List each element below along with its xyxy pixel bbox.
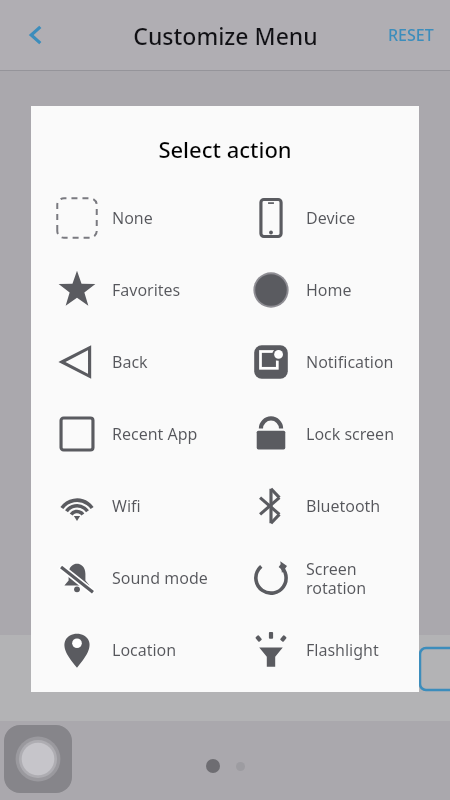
staticText: None [112, 207, 153, 229]
staticText: Flashlight [306, 639, 379, 661]
staticText: RESET [388, 24, 434, 46]
button[interactable]: RESET [380, 14, 442, 56]
button[interactable]: Favorites [31, 254, 225, 326]
staticText: Notification [306, 351, 394, 373]
button[interactable]: Flashlight [225, 614, 419, 686]
button[interactable]: Bluetooth [225, 470, 419, 542]
button[interactable]: Camera [4, 725, 72, 793]
staticText: Lock screen [306, 423, 395, 445]
button[interactable]: Back [14, 13, 58, 57]
button[interactable]: Screen rotation [225, 542, 419, 614]
staticText: Sound mode [112, 567, 208, 589]
staticText: Device [306, 207, 356, 229]
staticText: Favorites [112, 279, 181, 301]
staticText: Wifi [112, 495, 141, 517]
staticText: Home [306, 279, 352, 301]
button[interactable]: Lock screen [225, 398, 419, 470]
button[interactable]: Wifi [31, 470, 225, 542]
staticText: Back [112, 351, 148, 373]
button[interactable]: Device [225, 182, 419, 254]
staticText: Screen rotation [306, 558, 367, 599]
button[interactable]: Back [31, 326, 225, 398]
button[interactable]: Home [225, 254, 419, 326]
button[interactable]: None [31, 182, 225, 254]
staticText: Recent App [112, 423, 198, 445]
button[interactable]: Sound mode [31, 542, 225, 614]
button[interactable]: Recent App [31, 398, 225, 470]
staticText: Location [112, 639, 177, 661]
staticText: Customize Menu [133, 20, 318, 51]
staticText: Select action [31, 134, 419, 164]
button[interactable]: Location [31, 614, 225, 686]
staticText: Bluetooth [306, 495, 381, 517]
button[interactable]: Notification [225, 326, 419, 398]
